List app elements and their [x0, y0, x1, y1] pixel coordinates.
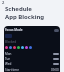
button[interactable]: Tue [5, 57, 59, 61]
staticText: Mon [5, 52, 12, 56]
button[interactable]: Wed [5, 62, 59, 66]
staticText: 2 [2, 0, 5, 5]
button[interactable]: Mon [5, 52, 59, 56]
staticText: Wed [5, 62, 12, 66]
button[interactable]: Start time [5, 68, 59, 72]
staticText: Start time [5, 68, 19, 72]
staticText: Schedule [5, 5, 32, 13]
button[interactable]: Focus Mode [5, 28, 59, 32]
staticText: App Blocking [5, 13, 45, 21]
staticText: Tue [5, 57, 11, 61]
staticText: 09:00 [51, 68, 59, 72]
staticText: Blocked [5, 40, 17, 44]
staticText: Focus Mode [5, 28, 23, 32]
